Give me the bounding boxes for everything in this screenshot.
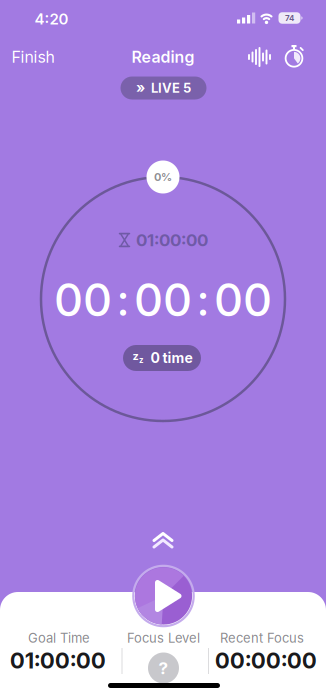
staticText: 74 — [285, 13, 294, 23]
staticText: 00 — [214, 273, 272, 327]
staticText: : — [116, 275, 129, 325]
staticText: Recent Focus — [220, 630, 304, 646]
button[interactable]: Sounds — [247, 46, 271, 68]
staticText: 01:00:00 — [10, 647, 106, 673]
staticText: 4:20 — [34, 10, 68, 28]
button[interactable]: Finish — [11, 48, 54, 66]
staticText: 00:00:00 — [215, 647, 317, 673]
staticText: 00 — [134, 273, 192, 327]
button[interactable]: Timer — [282, 44, 306, 68]
staticText: 01:00:00 — [136, 230, 208, 250]
staticText: 00 — [54, 273, 112, 327]
staticText: LIVE 5 — [151, 80, 191, 96]
button[interactable]: Focus level info — [148, 652, 179, 683]
staticText: : — [196, 275, 209, 325]
button[interactable]: » — [120, 76, 206, 99]
button[interactable]: Start — [131, 564, 195, 628]
staticText: 0% — [154, 170, 172, 183]
button[interactable]: Expand — [152, 531, 174, 548]
staticText: z — [139, 355, 144, 365]
staticText: z — [132, 349, 138, 362]
staticText: ? — [158, 658, 168, 678]
staticText: Goal Time — [28, 630, 90, 646]
staticText: Reading — [131, 48, 194, 66]
staticText: 0 time — [150, 350, 192, 366]
staticText: Focus Level — [127, 630, 200, 646]
staticText: Finish — [11, 48, 54, 66]
staticText: » — [136, 80, 145, 96]
